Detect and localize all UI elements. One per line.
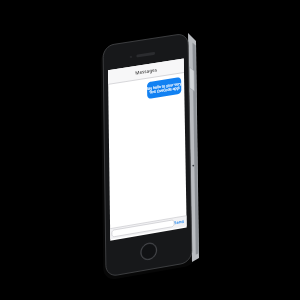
button[interactable]: iPhone mockup showing Messages app — [0, 0, 300, 300]
